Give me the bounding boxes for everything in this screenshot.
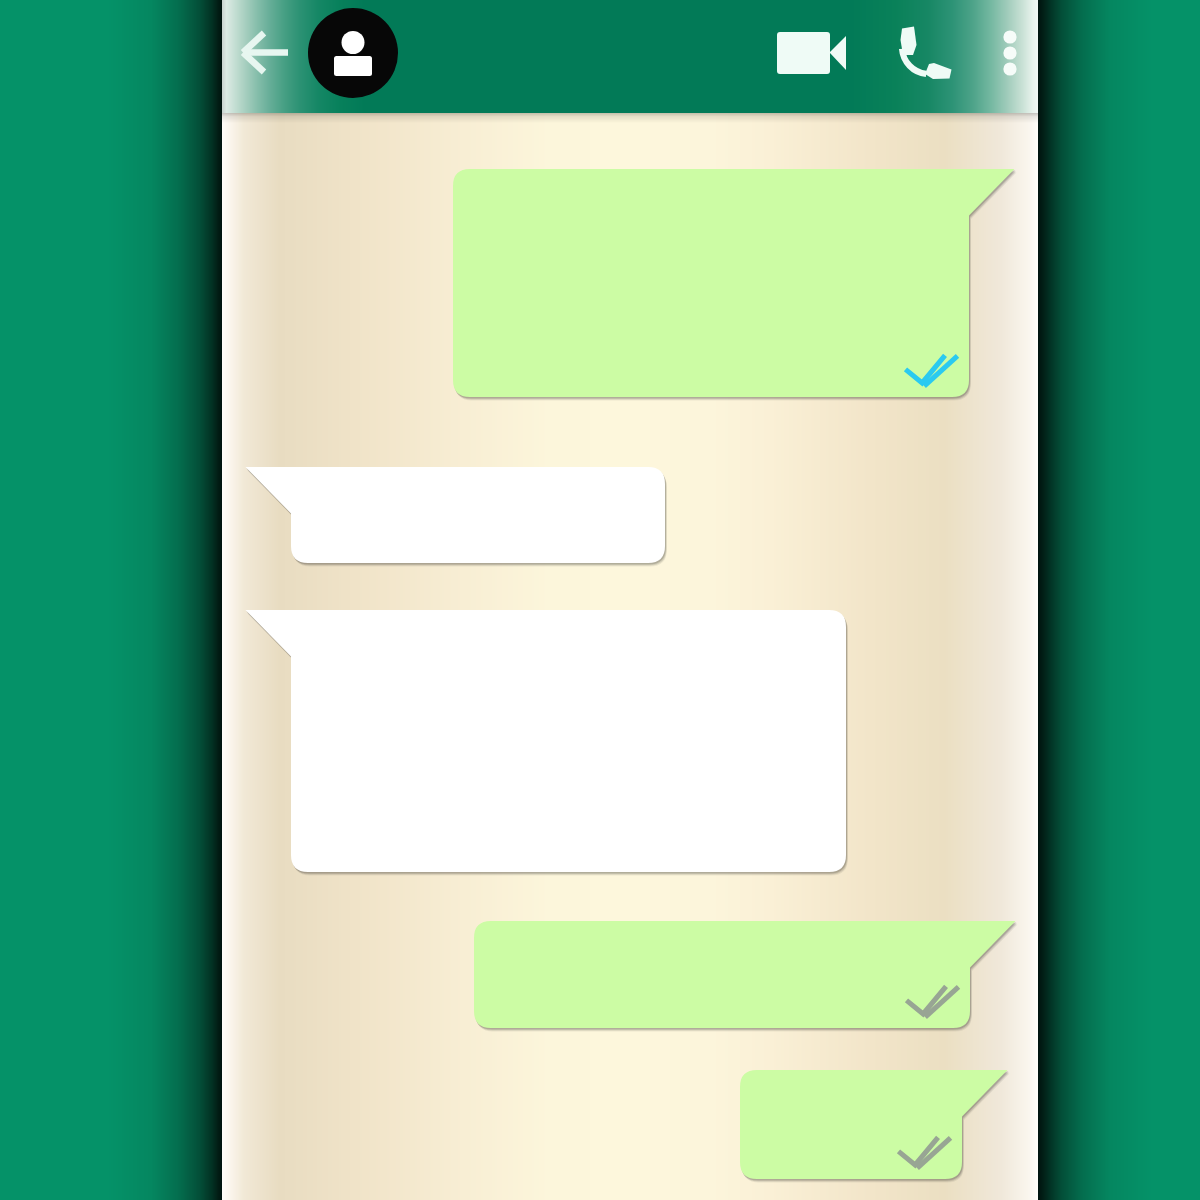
button[interactable]: Sent message, read xyxy=(453,169,1015,397)
button[interactable]: Contact profile photo xyxy=(308,8,398,98)
button[interactable]: More options xyxy=(984,18,1036,94)
button[interactable]: Received message xyxy=(245,610,846,872)
button[interactable]: Sent message, delivered xyxy=(474,921,1016,1028)
button[interactable]: Sent message, delivered xyxy=(740,1070,1008,1179)
button[interactable]: Video call xyxy=(765,18,857,94)
button[interactable]: Received message xyxy=(245,467,665,563)
button[interactable]: Voice call xyxy=(886,18,966,94)
button[interactable]: Back xyxy=(234,21,298,91)
